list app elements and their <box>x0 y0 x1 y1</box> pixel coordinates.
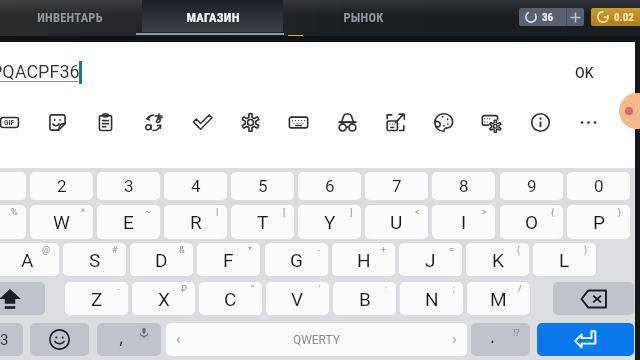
button[interactable]: Customize <box>472 103 510 141</box>
button[interactable]: 3 <box>97 172 160 200</box>
staticText: ) <box>584 245 588 256</box>
button[interactable]: O <box>500 205 563 239</box>
button[interactable]: Shift <box>0 282 45 315</box>
button[interactable]: 2 <box>30 172 93 200</box>
button[interactable]: ИНВЕНТАРЬ <box>10 0 130 34</box>
button[interactable]: G <box>265 243 328 276</box>
button[interactable]: 9 <box>500 172 563 200</box>
button[interactable]: J <box>399 243 462 276</box>
button[interactable]: Theme <box>424 103 462 141</box>
button[interactable]: Info <box>521 103 559 141</box>
staticText: ; <box>453 284 455 295</box>
button[interactable]: Q <box>0 205 26 239</box>
button[interactable]: Enter <box>537 323 634 356</box>
staticText: @ <box>42 245 51 256</box>
staticText: 8 <box>459 176 469 196</box>
button[interactable]: R <box>164 205 227 239</box>
button[interactable]: Comma <box>97 323 161 356</box>
staticText: K <box>492 249 504 271</box>
button[interactable]: OK <box>562 60 606 86</box>
button[interactable]: W <box>30 205 93 239</box>
staticText: R <box>190 211 202 233</box>
button[interactable]: Keyboard layout <box>279 103 317 141</box>
button[interactable]: Backspace <box>553 282 634 315</box>
button[interactable]: 8 <box>432 172 495 200</box>
staticText: T <box>257 211 269 233</box>
button[interactable]: Period <box>471 323 530 356</box>
button[interactable]: Y <box>298 205 361 239</box>
button[interactable]: 0 <box>567 172 630 200</box>
button[interactable]: 36 <box>519 8 584 26</box>
button[interactable]: T <box>231 205 294 239</box>
button[interactable]: QWERTY <box>166 323 467 356</box>
button[interactable]: РЫНОК <box>303 0 423 34</box>
button[interactable]: Stickers <box>38 103 76 141</box>
button[interactable]: МАГАЗИН <box>153 0 273 34</box>
button[interactable]: I <box>432 205 495 239</box>
button[interactable]: GIF <box>0 103 28 141</box>
staticText: 0.02 <box>614 11 634 24</box>
staticText: E <box>123 211 134 233</box>
staticText: ] <box>350 207 353 218</box>
button[interactable]: Add credits <box>567 8 584 26</box>
staticText: 5 <box>258 176 268 196</box>
button[interactable]: Emoji <box>30 323 89 356</box>
staticText: > <box>482 207 487 218</box>
staticText: 2 <box>57 176 67 196</box>
button[interactable]: H <box>332 243 395 276</box>
staticText: ~ <box>145 207 152 218</box>
button[interactable]: S <box>63 243 126 276</box>
staticText: " <box>251 284 254 295</box>
button[interactable]: Clipboard <box>86 103 124 141</box>
button[interactable]: Settings <box>231 103 269 141</box>
button[interactable]: 5 <box>231 172 294 200</box>
staticText: B <box>359 288 371 310</box>
button[interactable]: K <box>466 243 529 276</box>
button[interactable]: 6 <box>298 172 361 200</box>
button[interactable]: P <box>567 205 630 239</box>
button[interactable]: 0.02 <box>591 8 640 26</box>
staticText: + <box>381 245 387 256</box>
staticText: W <box>53 211 70 233</box>
button[interactable]: Grammar check <box>183 103 221 141</box>
staticText: Y <box>324 211 336 233</box>
staticText: } <box>618 207 622 218</box>
staticText: ( <box>517 245 521 256</box>
button[interactable]: 1 <box>0 172 26 200</box>
staticText: 7 <box>392 176 402 196</box>
staticText: ₽ <box>181 284 187 295</box>
staticText: QWERTY <box>293 333 340 347</box>
button[interactable]: 4 <box>164 172 227 200</box>
button[interactable]: F <box>197 243 260 276</box>
button[interactable]: Incognito mode <box>328 103 366 141</box>
staticText: GIF <box>4 118 14 127</box>
button[interactable]: C <box>199 282 262 315</box>
button[interactable]: Symbols <box>0 323 23 356</box>
staticText: 0 <box>594 176 604 196</box>
staticText: ^ <box>81 207 85 218</box>
button[interactable]: M <box>467 282 530 315</box>
button[interactable]: More options <box>569 103 607 141</box>
button[interactable]: V <box>266 282 329 315</box>
button[interactable]: L <box>533 243 596 276</box>
button[interactable]: Profile <box>619 93 640 129</box>
button[interactable]: E <box>97 205 160 239</box>
button[interactable]: Resize keyboard <box>376 103 414 141</box>
button[interactable]: D <box>130 243 193 276</box>
staticText: : <box>385 284 388 295</box>
button[interactable]: B <box>333 282 396 315</box>
button[interactable]: U <box>365 205 428 239</box>
button[interactable]: N <box>400 282 463 315</box>
button[interactable]: A <box>0 243 59 276</box>
button[interactable] <box>142 0 283 32</box>
staticText: ?123 <box>0 331 9 349</box>
staticText: = <box>449 245 454 256</box>
button[interactable]: 7 <box>365 172 428 200</box>
staticText: H <box>357 249 371 271</box>
staticText: - <box>317 245 320 256</box>
button[interactable]: Translate <box>135 103 173 141</box>
staticText: OK <box>575 65 594 81</box>
button[interactable]: Z <box>65 282 128 315</box>
button[interactable]: X <box>132 282 195 315</box>
